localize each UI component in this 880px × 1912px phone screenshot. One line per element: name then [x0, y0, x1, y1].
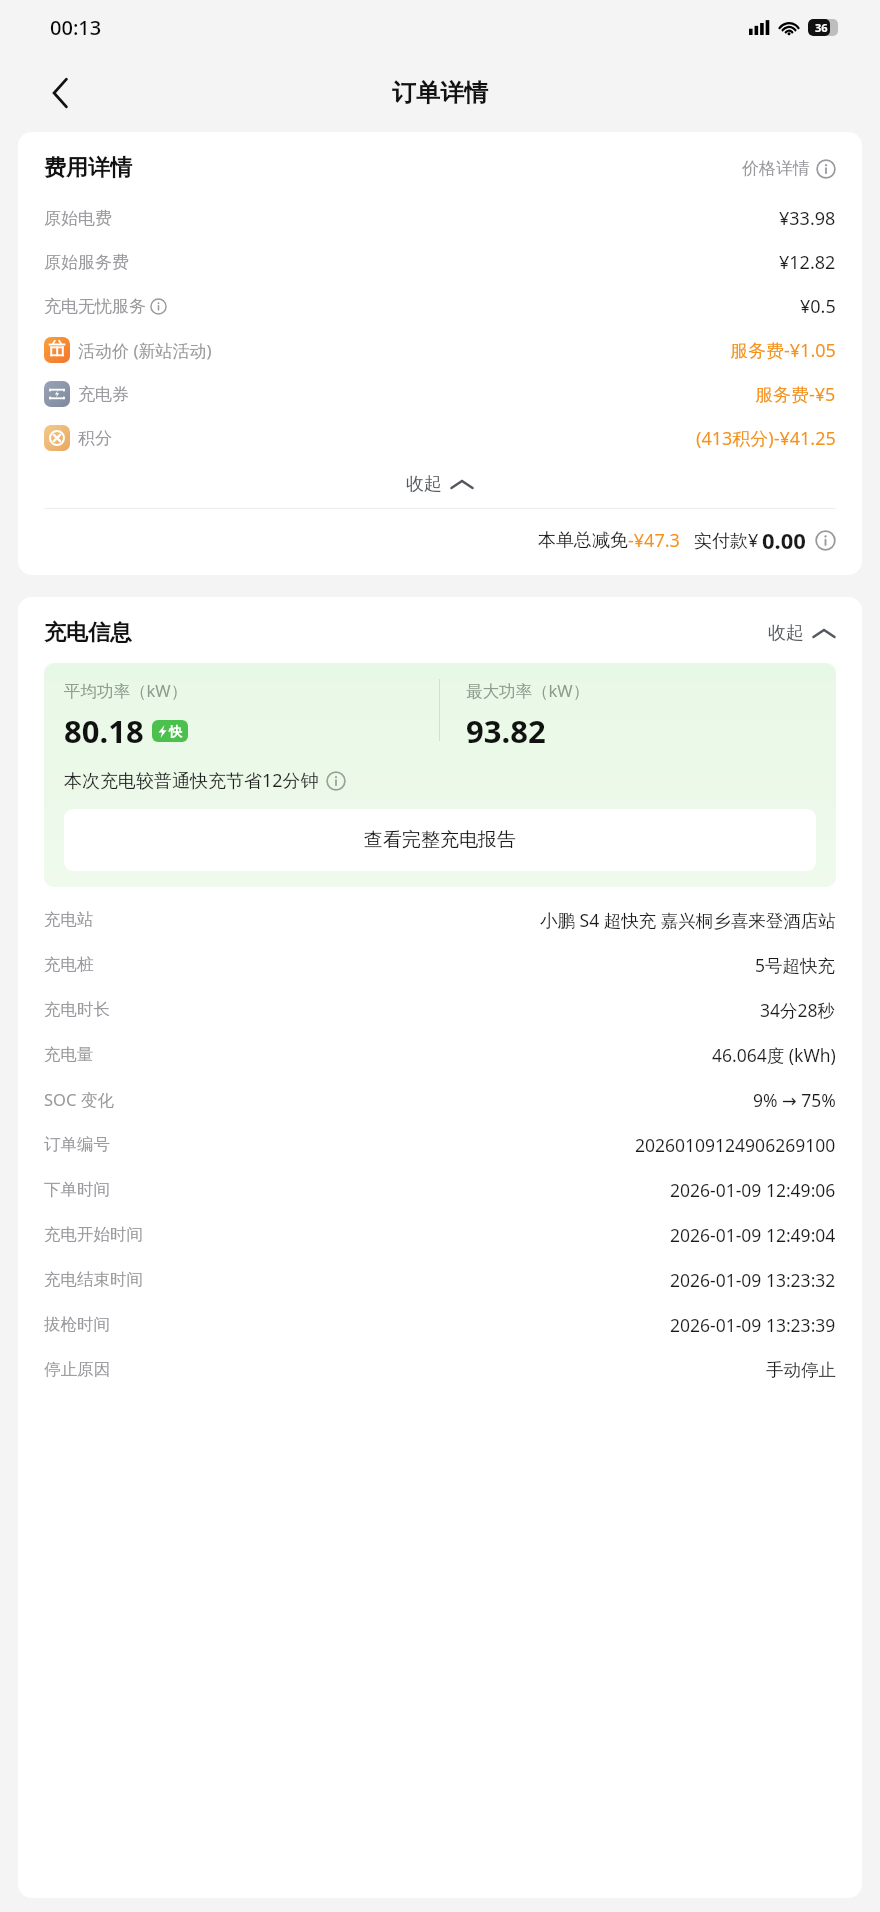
- staticText: 服务费-¥5: [755, 382, 836, 407]
- staticText: 原始服务费: [44, 252, 129, 273]
- staticText: 服务费-¥1.05: [730, 338, 836, 363]
- staticText: 93.82: [466, 710, 546, 752]
- staticText: 拔枪时间: [44, 1314, 110, 1335]
- staticText: 下单时间: [44, 1179, 110, 1200]
- staticText: ¥12.82: [779, 250, 836, 275]
- button[interactable]: Payment info: [815, 530, 836, 551]
- staticText: 费用详情: [44, 154, 132, 182]
- staticText: -¥47.3: [628, 528, 680, 553]
- staticText: 充电信息: [44, 619, 132, 647]
- staticText: 查看完整充电报告: [364, 828, 516, 852]
- staticText: 充电券: [78, 384, 129, 405]
- staticText: 80.18: [64, 710, 144, 752]
- staticText: 手动停止: [766, 1359, 836, 1381]
- button[interactable]: 收起: [768, 622, 836, 645]
- staticText: ¥0.5: [800, 294, 836, 319]
- staticText: 充电站: [44, 909, 94, 930]
- staticText: 9% → 75%: [753, 1088, 836, 1112]
- staticText: 00:13: [50, 14, 102, 41]
- staticText: 2026-01-09 13:23:39: [670, 1313, 836, 1337]
- staticText: 价格详情: [742, 158, 810, 179]
- staticText: 积分: [78, 428, 112, 449]
- staticText: 订单详情: [392, 78, 488, 108]
- button[interactable]: 价格详情: [742, 158, 836, 179]
- staticText: 原始电费: [44, 208, 112, 229]
- staticText: 2026-01-09 13:23:32: [670, 1268, 836, 1292]
- staticText: 本单总减免: [538, 529, 628, 552]
- staticText: 5号超快充: [755, 953, 836, 977]
- staticText: 充电无忧服务: [44, 296, 146, 317]
- staticText: (413积分)-¥41.25: [696, 426, 836, 451]
- staticText: SOC 变化: [44, 1088, 114, 1111]
- button[interactable]: 查看完整充电报告: [64, 809, 816, 871]
- button[interactable]: Back: [36, 69, 84, 117]
- staticText: 快: [169, 723, 182, 739]
- staticText: 实付款¥: [694, 528, 759, 553]
- staticText: 小鹏 S4 超快充 嘉兴桐乡喜来登酒店站: [540, 908, 836, 932]
- staticText: 平均功率（kW）: [64, 679, 188, 702]
- button[interactable]: 收起: [44, 460, 836, 508]
- staticText: 34分28秒: [760, 998, 836, 1022]
- staticText: 20260109124906269100: [635, 1133, 836, 1157]
- staticText: 46.064度 (kWh): [712, 1043, 836, 1067]
- staticText: 订单编号: [44, 1134, 110, 1155]
- staticText: 最大功率（kW）: [466, 679, 590, 702]
- staticText: 停止原因: [44, 1359, 110, 1380]
- staticText: 充电时长: [44, 999, 110, 1020]
- staticText: 收起: [768, 622, 804, 645]
- staticText: 收起: [406, 473, 442, 496]
- staticText: 充电桩: [44, 954, 94, 975]
- staticText: 活动价 (新站活动): [78, 339, 212, 362]
- staticText: 2026-01-09 12:49:06: [670, 1178, 836, 1202]
- staticText: 本次充电较普通快充节省12分钟: [64, 768, 319, 793]
- staticText: 36: [815, 20, 828, 35]
- staticText: 2026-01-09 12:49:04: [670, 1223, 836, 1247]
- staticText: 充电开始时间: [44, 1224, 143, 1245]
- staticText: 充电量: [44, 1044, 94, 1065]
- staticText: 充电结束时间: [44, 1269, 143, 1290]
- staticText: 0.00: [762, 525, 806, 555]
- staticText: ¥33.98: [779, 206, 836, 231]
